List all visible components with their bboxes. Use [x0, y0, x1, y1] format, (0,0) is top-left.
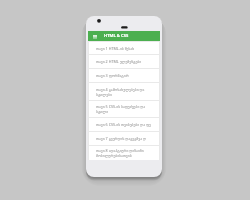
button[interactable]: თავი 4 გამოსახულებები და სტილები: [89, 83, 159, 100]
button[interactable]: Menu: [88, 31, 160, 41]
staticText: თავი 2 HTML ელემენტები: [96, 59, 142, 64]
staticText: თავი 4 გამოსახულებები და სტილები: [96, 87, 156, 97]
button[interactable]: თავი 1 HTML-ის შესახ: [89, 42, 159, 54]
button[interactable]: თავი 6 CSS-ის თვისებები და ფე: [89, 118, 159, 131]
staticText: თავი 5 CSS-ის საფუძვები და სტილი: [96, 104, 156, 114]
staticText: თავი 6 CSS-ის თვისებები და ფე: [96, 122, 151, 127]
button[interactable]: თავი 2 HTML ელემენტები: [89, 55, 159, 68]
other: Menu: [93, 35, 97, 38]
staticText: თავი 8 ადაპტიური დიზაინი მობილურებისათვი…: [96, 148, 156, 158]
button[interactable]: თავი 7 გვერდის დაგეგმვა დ: [89, 132, 159, 145]
button[interactable]: თავი 8 ადაპტიური დიზაინი მობილურებისათვი…: [89, 146, 159, 160]
staticText: თავი 1 HTML-ის შესახ: [96, 46, 135, 51]
button[interactable]: თავი 3 ფორმატირ: [89, 69, 159, 82]
button[interactable]: თავი 5 CSS-ის საფუძვები და სტილი: [89, 101, 159, 117]
staticText: თავი 3 ფორმატირ: [96, 73, 129, 78]
staticText: HTML & CSS: [104, 33, 129, 39]
staticText: თავი 7 გვერდის დაგეგმვა დ: [96, 136, 147, 141]
